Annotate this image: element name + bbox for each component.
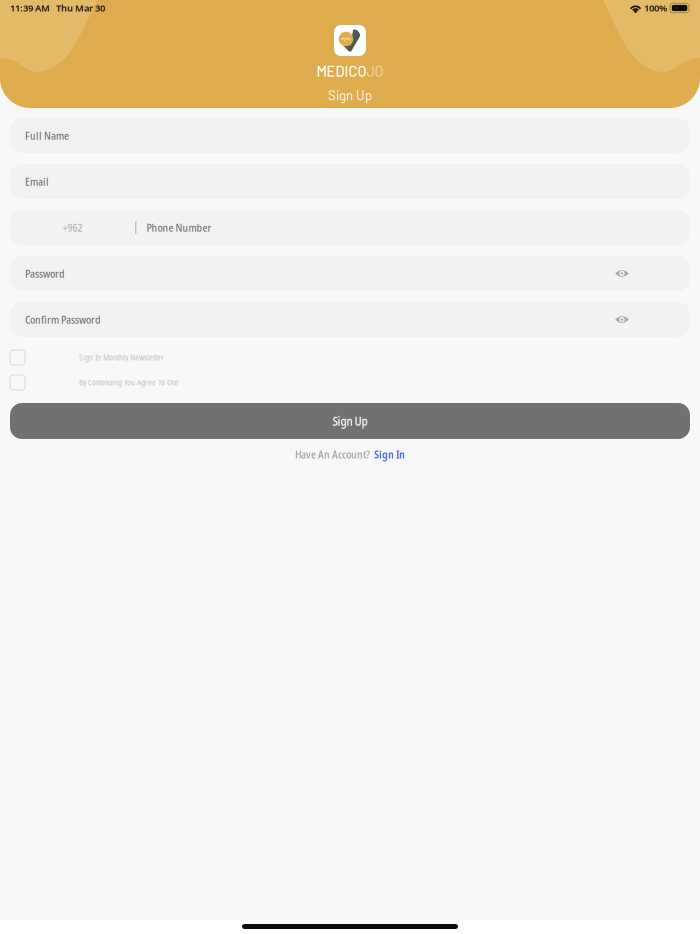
staticText: Phone Number [146, 220, 211, 235]
staticText: MEDICO [316, 62, 366, 80]
staticText: Sign Up [328, 87, 372, 103]
button[interactable]: Full Name [10, 118, 690, 153]
staticText: Sign In Monthly Newsletter [79, 352, 164, 363]
button[interactable]: Confirm Password [10, 302, 690, 337]
button[interactable]: Password [10, 256, 690, 291]
button[interactable]: Email [10, 164, 690, 199]
button[interactable]: Sign Up [10, 403, 690, 439]
button[interactable]: By Continuing You Agree To Our [10, 375, 690, 390]
staticText: +962 [62, 220, 82, 235]
staticText: Have An Account? [295, 447, 370, 461]
staticText: 11:39 AM [10, 2, 50, 14]
staticText: JO [366, 62, 383, 80]
staticText: 100% [642, 2, 669, 14]
staticText: Email [25, 174, 49, 189]
staticText: Full Name [25, 128, 69, 143]
staticText: Sign Up [332, 413, 367, 429]
staticText: Sign In [374, 447, 405, 461]
staticText: Confirm Password [25, 312, 101, 327]
button[interactable]: +962 [10, 210, 690, 245]
staticText: By Continuing You Agree To Our [79, 377, 179, 388]
button[interactable]: MedicoJo [316, 25, 383, 80]
button[interactable]: Sign In Monthly Newsletter [10, 350, 690, 365]
button[interactable]: Sign In [374, 447, 405, 461]
staticText: Thu Mar 30 [50, 2, 105, 14]
staticText: Password [25, 266, 65, 281]
